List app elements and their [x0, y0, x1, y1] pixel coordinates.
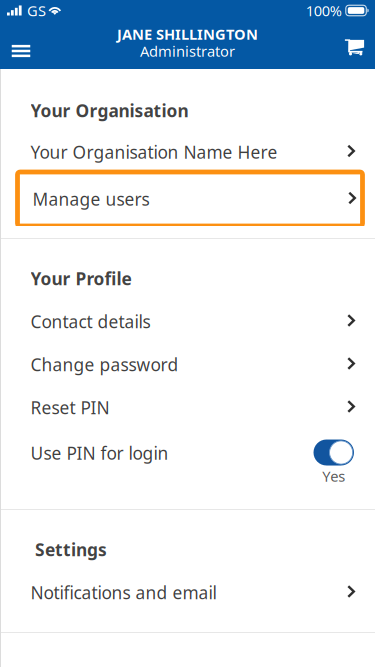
staticText: Your Profile — [30, 267, 131, 290]
staticText: Settings — [35, 538, 107, 561]
staticText: Administrator — [140, 41, 235, 61]
staticText: 100% — [306, 1, 342, 20]
button[interactable]: Your Organisation Name Here — [0, 132, 375, 172]
button[interactable]: Change password — [0, 343, 375, 386]
button[interactable]: Menu — [0, 21, 42, 69]
staticText: GS — [27, 1, 46, 20]
staticText: Contact details — [30, 310, 150, 333]
button[interactable]: Reset PIN — [0, 386, 375, 429]
staticText: JANE SHILLINGTON — [117, 24, 258, 44]
staticText: Notifications and email — [30, 581, 216, 604]
staticText: Change password — [30, 353, 178, 376]
button[interactable]: Manage users — [0, 172, 375, 226]
staticText: Yes — [322, 466, 345, 486]
staticText: Your Organisation Name Here — [30, 140, 277, 163]
staticText: Reset PIN — [30, 396, 109, 419]
button[interactable]: Shopping cart — [334, 21, 374, 69]
button[interactable]: Notifications and email — [0, 571, 375, 614]
button[interactable]: Contact details — [0, 300, 375, 343]
button[interactable]: Use PIN for login — [313, 439, 354, 489]
staticText: Manage users — [32, 187, 149, 210]
staticText: Your Organisation — [30, 99, 188, 122]
staticText: Use PIN for login — [30, 441, 168, 464]
